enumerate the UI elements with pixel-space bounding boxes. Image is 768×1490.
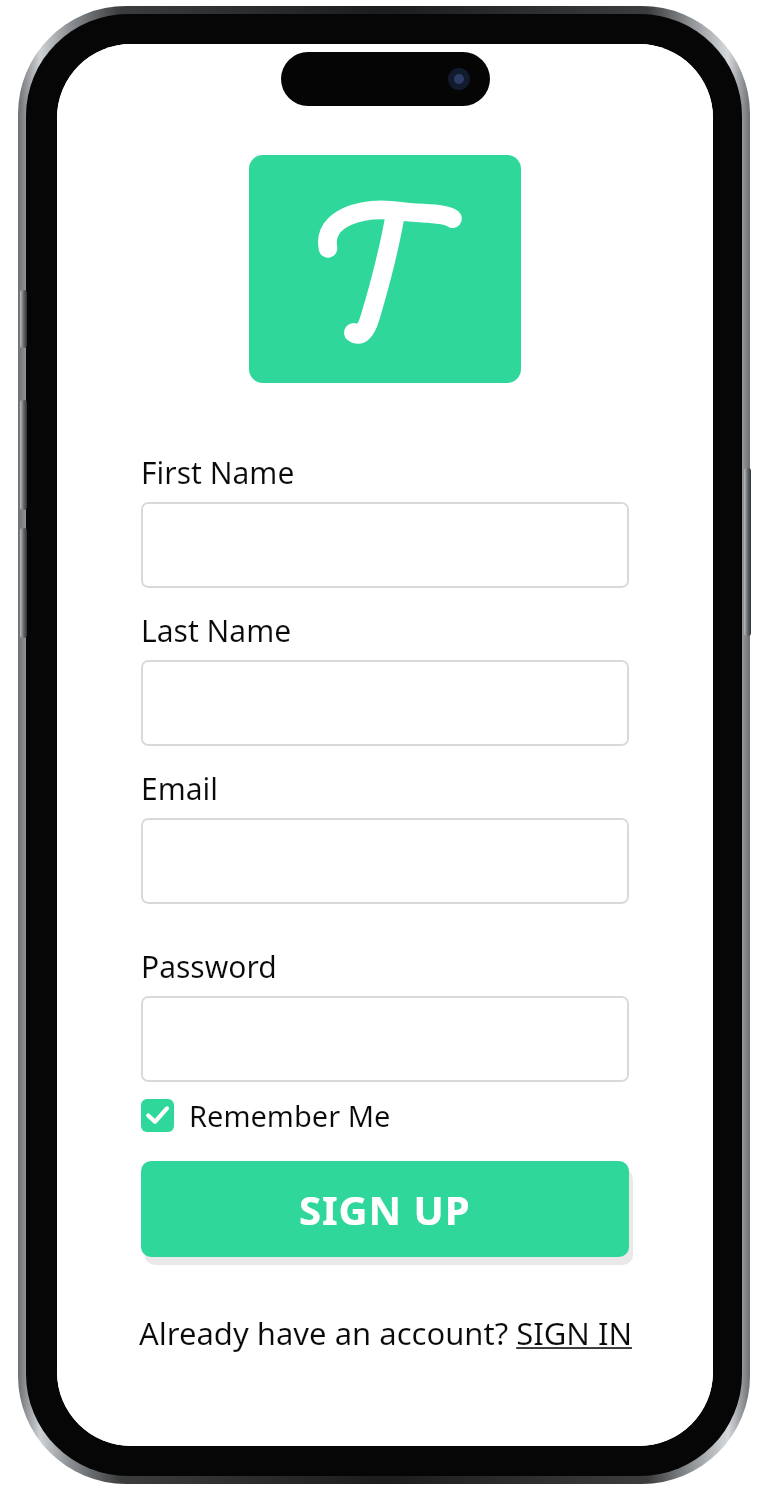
staticText: Password [141, 946, 277, 987]
staticText: First Name [141, 452, 295, 493]
staticText: SIGN UP [299, 1182, 471, 1236]
staticText: Remember Me [189, 1096, 391, 1135]
staticText: Last Name [141, 610, 292, 651]
button[interactable] [141, 996, 629, 1082]
button[interactable]: Remember Me checkbox [141, 1096, 391, 1135]
staticText: Email [141, 768, 219, 809]
button[interactable]: Already have an account? SIGN IN [139, 1312, 632, 1354]
button[interactable] [141, 660, 629, 746]
other: Remember Me checkbox [141, 1099, 174, 1132]
button[interactable]: SIGN UP [141, 1161, 629, 1257]
button[interactable] [141, 502, 629, 588]
button[interactable] [141, 818, 629, 904]
staticText: Already have an account? SIGN IN [139, 1312, 632, 1354]
